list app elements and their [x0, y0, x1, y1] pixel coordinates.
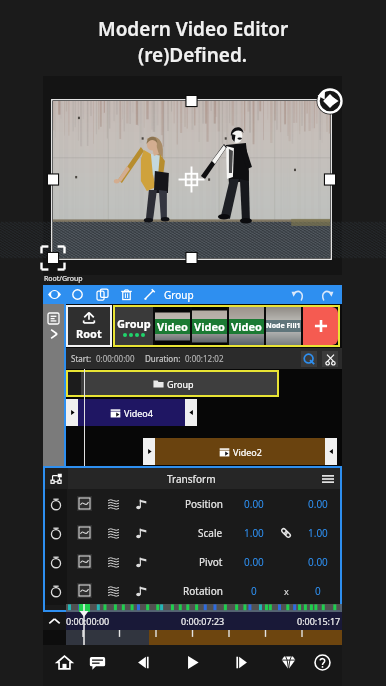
button[interactable]: Waveform	[106, 555, 120, 569]
button[interactable]: Audio	[134, 555, 148, 569]
button[interactable]: Edit	[138, 285, 161, 304]
staticText: Root/Group	[44, 274, 83, 284]
staticText: Start:	[71, 353, 92, 364]
button[interactable]: Redo	[314, 285, 339, 304]
staticText: Pivot	[199, 555, 223, 569]
staticText: Group	[117, 316, 151, 331]
button[interactable]: Previous frame	[125, 645, 159, 679]
staticText: Transform	[167, 472, 216, 486]
button[interactable]: Video2	[155, 438, 325, 465]
button[interactable]: Curve editor	[45, 576, 340, 605]
button[interactable]: Curve editor	[77, 496, 92, 511]
staticText: Duration:	[145, 353, 181, 364]
button[interactable]: Layers	[47, 312, 60, 325]
staticText: Video4	[124, 407, 153, 419]
button[interactable]: Waveform	[106, 526, 120, 540]
staticText: Group	[167, 378, 194, 390]
staticText: Video	[231, 319, 262, 334]
button[interactable]: Group	[68, 372, 277, 395]
button[interactable]: Curve editor	[45, 489, 340, 518]
button[interactable]: Undo	[281, 285, 314, 304]
button[interactable]: Audio	[134, 526, 148, 540]
button[interactable]: Play	[175, 645, 209, 679]
staticText: 1.00	[308, 526, 328, 540]
button[interactable]: Curve editor	[77, 525, 92, 540]
staticText: 0.00	[308, 555, 328, 569]
button[interactable]: Trim end	[325, 438, 337, 465]
staticText: Video	[157, 319, 188, 334]
staticText: 0:00:00:00	[96, 353, 135, 364]
button[interactable]: Help	[305, 645, 339, 679]
button[interactable]: Collapse	[43, 612, 66, 630]
button[interactable]: Trim start	[143, 438, 155, 465]
staticText: x	[284, 585, 289, 597]
staticText: 0:00:15:17	[297, 615, 341, 627]
staticText: Position	[185, 497, 223, 511]
staticText: 0.00	[244, 555, 264, 569]
staticText: 0.00	[308, 497, 328, 511]
button[interactable]: Visibility	[43, 285, 65, 304]
button[interactable]: Trim start	[66, 399, 78, 426]
button[interactable]: Curve editor	[77, 554, 92, 569]
staticText: Rotation	[183, 584, 223, 598]
button[interactable]: Audio	[134, 584, 148, 598]
staticText: Video	[194, 319, 225, 334]
button[interactable]: Duplicate	[90, 285, 114, 304]
button[interactable]: Curve editor	[45, 518, 340, 547]
button[interactable]: Curve editor	[45, 547, 340, 576]
staticText: Node Fill1	[266, 321, 301, 331]
button[interactable]: Select	[65, 285, 90, 304]
staticText: Scale	[198, 526, 223, 540]
button[interactable]: Link clip	[301, 351, 317, 367]
button[interactable]: Root	[68, 307, 110, 345]
button[interactable]: Group	[115, 307, 153, 345]
button[interactable]: Group	[161, 288, 194, 302]
staticText: 1.00	[244, 526, 264, 540]
button[interactable]: Next frame	[225, 645, 259, 679]
button[interactable]: Home	[48, 645, 80, 679]
staticText: Video2	[233, 446, 262, 458]
staticText: 0	[315, 584, 321, 598]
staticText: Modern Video Editor	[98, 16, 289, 42]
button[interactable]: Video4	[78, 399, 185, 426]
button[interactable]: Comments	[80, 645, 114, 679]
staticText: Group	[164, 288, 194, 302]
staticText: Root	[76, 326, 102, 341]
staticText: 0.00	[244, 497, 264, 511]
button[interactable]: Waveform	[106, 497, 120, 511]
button[interactable]: Add layer	[303, 307, 338, 345]
staticText: 0	[251, 584, 257, 598]
button[interactable]: Expand	[47, 327, 60, 340]
staticText: 0:00:12:02	[185, 353, 224, 364]
button[interactable]: Delete	[114, 285, 138, 304]
staticText: 0:00:00:00	[66, 615, 110, 627]
button[interactable]: Trim end	[185, 399, 197, 426]
button[interactable]: Menu	[316, 468, 340, 489]
staticText: 0:00:07:23	[181, 615, 225, 627]
button[interactable]: Premium	[271, 645, 305, 679]
button[interactable]: Curve editor	[77, 583, 92, 598]
staticText: (re)Defined.	[138, 42, 248, 68]
button[interactable]: Cut	[322, 351, 338, 367]
button[interactable]: Waveform	[106, 584, 120, 598]
button[interactable]: Audio	[134, 497, 148, 511]
